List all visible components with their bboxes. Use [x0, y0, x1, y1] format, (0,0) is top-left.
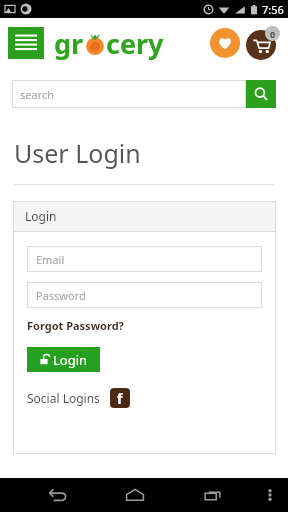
staticText: gr: [54, 25, 84, 62]
button[interactable]: Forgot Password?: [27, 318, 124, 333]
staticText: Email: [36, 252, 65, 267]
button[interactable]: Password: [27, 282, 262, 308]
staticText: Password: [36, 288, 86, 303]
button[interactable]: Email: [27, 246, 262, 272]
staticText: search: [20, 87, 55, 102]
staticText: Social Logins: [27, 390, 100, 406]
button[interactable]: Login with Facebook: [110, 388, 130, 408]
button[interactable]: More options: [252, 478, 288, 512]
staticText: Login: [53, 351, 88, 369]
staticText: 7:56: [262, 2, 284, 17]
button[interactable]: Cart: [246, 30, 276, 60]
staticText: Forgot Password?: [27, 318, 124, 333]
button[interactable]: Menu: [8, 27, 44, 59]
staticText: 0: [270, 28, 276, 40]
button[interactable]: Wishlist: [210, 28, 240, 58]
staticText: cery: [106, 25, 164, 62]
button[interactable]: Login: [27, 347, 100, 372]
staticText: User Login: [14, 136, 141, 170]
staticText: Login: [25, 208, 57, 224]
button[interactable]: Search: [246, 80, 276, 108]
staticText: f: [117, 389, 123, 408]
button[interactable]: Home: [96, 478, 174, 512]
button[interactable]: Back: [18, 478, 96, 512]
button[interactable]: Recent apps: [174, 478, 252, 512]
button[interactable]: search: [12, 80, 246, 108]
button[interactable]: gr: [54, 25, 164, 62]
